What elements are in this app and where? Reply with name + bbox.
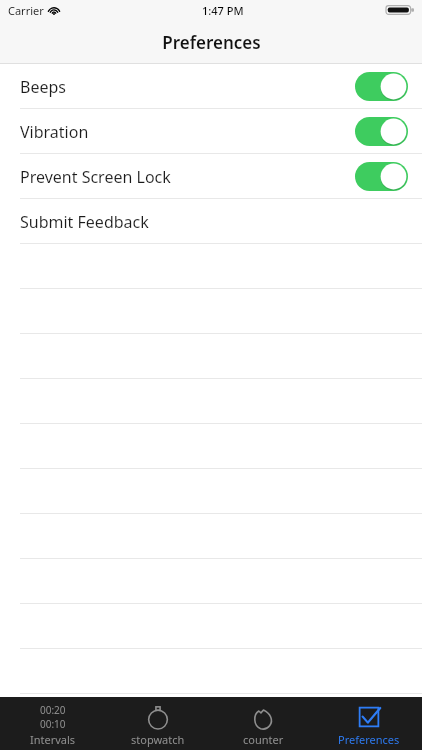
staticText: Carrier: [8, 3, 44, 18]
staticText: 1:47 PM: [202, 3, 244, 18]
button[interactable]: 00:20: [0, 697, 105, 750]
button[interactable]: Toggle: [355, 162, 408, 191]
staticText: stopwatch: [131, 732, 185, 747]
button[interactable]: counter: [210, 697, 316, 750]
button[interactable]: Submit Feedback: [0, 199, 422, 244]
staticText: Vibration: [20, 121, 89, 143]
button[interactable]: Toggle: [355, 72, 408, 101]
staticText: counter: [243, 732, 284, 747]
button[interactable]: Toggle: [355, 117, 408, 146]
button[interactable]: Vibration: [0, 109, 422, 154]
staticText: Submit Feedback: [20, 211, 149, 233]
staticText: 00:20: [40, 703, 66, 717]
button[interactable]: Prevent Screen Lock: [0, 154, 422, 199]
button[interactable]: Preferences: [316, 697, 422, 750]
staticText: Preferences: [162, 31, 261, 54]
staticText: Beeps: [20, 76, 66, 98]
staticText: Preferences: [338, 732, 400, 747]
staticText: Intervals: [30, 732, 76, 747]
staticText: 00:10: [40, 717, 66, 731]
staticText: Prevent Screen Lock: [20, 166, 171, 188]
button[interactable]: Beeps: [0, 64, 422, 109]
button[interactable]: stopwatch: [105, 697, 210, 750]
